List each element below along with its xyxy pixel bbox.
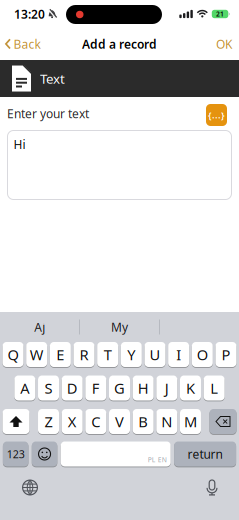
staticText: E bbox=[56, 345, 64, 364]
button[interactable]: 123 bbox=[3, 441, 28, 466]
staticText: PL EN bbox=[148, 455, 167, 464]
staticText: T bbox=[104, 345, 112, 364]
staticText: L bbox=[210, 378, 218, 398]
staticText: N bbox=[161, 412, 172, 431]
staticText: OK bbox=[216, 36, 232, 52]
button[interactable]: Hi bbox=[7, 130, 232, 200]
button[interactable]: G bbox=[109, 375, 130, 400]
staticText: V bbox=[115, 412, 124, 431]
staticText: C bbox=[91, 412, 100, 431]
staticText: R bbox=[79, 345, 88, 364]
button[interactable]: I bbox=[168, 342, 189, 367]
button[interactable] bbox=[32, 441, 57, 466]
button[interactable]: N bbox=[156, 409, 177, 434]
button[interactable]: T bbox=[97, 342, 118, 367]
staticText: W bbox=[30, 345, 44, 364]
staticText: Add a record bbox=[82, 36, 157, 52]
staticText: Q bbox=[7, 345, 18, 364]
staticText: {...} bbox=[208, 109, 225, 121]
staticText: P bbox=[221, 345, 230, 364]
button[interactable]: P bbox=[215, 342, 236, 367]
button[interactable] bbox=[206, 479, 239, 495]
staticText: I bbox=[176, 345, 181, 364]
button[interactable]: S bbox=[38, 375, 59, 400]
staticText: return bbox=[188, 446, 223, 462]
button[interactable]: U bbox=[144, 342, 165, 367]
staticText: 21 bbox=[216, 10, 224, 18]
staticText: My bbox=[111, 319, 128, 335]
button[interactable]: V bbox=[109, 409, 130, 434]
button[interactable]: J bbox=[156, 375, 177, 400]
button[interactable]: R bbox=[73, 342, 94, 367]
button[interactable]: H bbox=[133, 375, 154, 400]
staticText: F bbox=[92, 378, 100, 398]
staticText: 13:20 bbox=[14, 6, 45, 22]
staticText: Aj bbox=[34, 319, 45, 335]
button[interactable] bbox=[61, 441, 171, 466]
button[interactable]: Q bbox=[2, 342, 23, 367]
staticText: Z bbox=[44, 412, 52, 431]
staticText: Back bbox=[13, 36, 40, 52]
button[interactable]: M bbox=[180, 409, 201, 434]
button[interactable]: E bbox=[50, 342, 71, 367]
staticText: G bbox=[114, 378, 125, 398]
staticText: A bbox=[20, 378, 29, 398]
button[interactable]: Back bbox=[0, 36, 40, 52]
staticText: S bbox=[44, 378, 52, 398]
staticText: Y bbox=[127, 345, 135, 364]
button[interactable]: B bbox=[133, 409, 154, 434]
staticText: D bbox=[67, 378, 78, 398]
staticText: J bbox=[165, 378, 169, 398]
button[interactable]: Y bbox=[121, 342, 142, 367]
button[interactable]: C bbox=[85, 409, 106, 434]
button[interactable] bbox=[0, 479, 38, 495]
button[interactable]: X bbox=[62, 409, 83, 434]
staticText: B bbox=[138, 412, 148, 431]
button[interactable]: W bbox=[26, 342, 47, 367]
button[interactable]: L bbox=[204, 375, 225, 400]
button[interactable]: Z bbox=[38, 409, 59, 434]
button[interactable]: F bbox=[85, 375, 106, 400]
staticText: M bbox=[184, 412, 197, 431]
staticText: K bbox=[186, 378, 195, 398]
button[interactable]: {...} bbox=[206, 102, 239, 124]
staticText: 123 bbox=[7, 447, 25, 461]
staticText: U bbox=[149, 345, 160, 364]
button[interactable]: O bbox=[192, 342, 213, 367]
button[interactable]: return bbox=[174, 441, 236, 466]
button[interactable]: Aj bbox=[0, 312, 79, 342]
staticText: Hi bbox=[13, 136, 25, 152]
button[interactable]: K bbox=[180, 375, 201, 400]
button[interactable] bbox=[209, 409, 236, 434]
staticText: H bbox=[138, 378, 149, 398]
staticText: Text bbox=[40, 70, 65, 87]
staticText: X bbox=[68, 412, 77, 431]
staticText: Enter your text bbox=[7, 105, 89, 121]
staticText: O bbox=[197, 345, 208, 364]
button[interactable]: OK bbox=[216, 36, 239, 52]
button[interactable]: A bbox=[14, 375, 35, 400]
button[interactable]: D bbox=[62, 375, 83, 400]
button[interactable]: My bbox=[80, 312, 159, 342]
button[interactable] bbox=[2, 409, 29, 434]
